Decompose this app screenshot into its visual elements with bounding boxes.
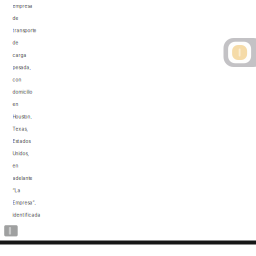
staticText: empresa: [12, 3, 32, 9]
staticText: transporte: [12, 28, 36, 33]
staticText: “La: [12, 188, 20, 193]
staticText: carga: [12, 52, 26, 58]
staticText: Estados: [12, 138, 30, 144]
staticText: en: [12, 102, 18, 107]
staticText: en: [12, 163, 18, 169]
staticText: Empresa”,: [12, 200, 35, 206]
button[interactable]: Page thumbnail: [4, 225, 18, 236]
staticText: domicilio: [12, 89, 32, 95]
staticText: de: [12, 15, 18, 21]
staticText: Unidos,: [12, 151, 28, 156]
staticText: pesada,: [12, 65, 30, 70]
staticText: con: [12, 77, 21, 83]
staticText: identificada: [12, 212, 40, 218]
staticText: de: [12, 40, 18, 46]
staticText: adelante: [12, 175, 32, 181]
button[interactable]: Open app: [223, 38, 256, 67]
staticText: Texas,: [12, 126, 27, 132]
staticText: Houston,: [12, 114, 31, 119]
